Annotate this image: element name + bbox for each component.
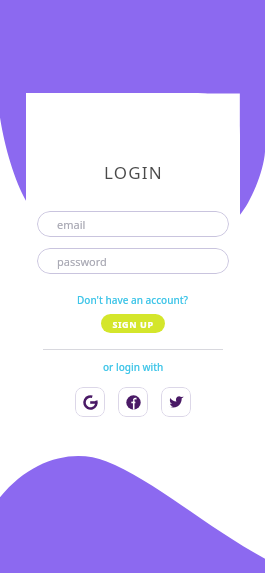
button[interactable]: SIGN UP: [101, 314, 165, 333]
staticText: SIGN UP: [112, 318, 154, 330]
staticText: LOGIN: [104, 161, 163, 184]
button[interactable]: password: [37, 248, 229, 274]
button[interactable]: Sign in with Google: [75, 387, 105, 417]
button[interactable]: Sign in with Facebook: [118, 387, 148, 417]
button[interactable]: Don't have an account?: [77, 293, 189, 307]
staticText: password: [57, 254, 107, 269]
button[interactable]: Sign in with Twitter: [161, 387, 191, 417]
staticText: email: [57, 217, 86, 232]
button[interactable]: email: [37, 211, 229, 237]
staticText: or login with: [103, 360, 164, 374]
